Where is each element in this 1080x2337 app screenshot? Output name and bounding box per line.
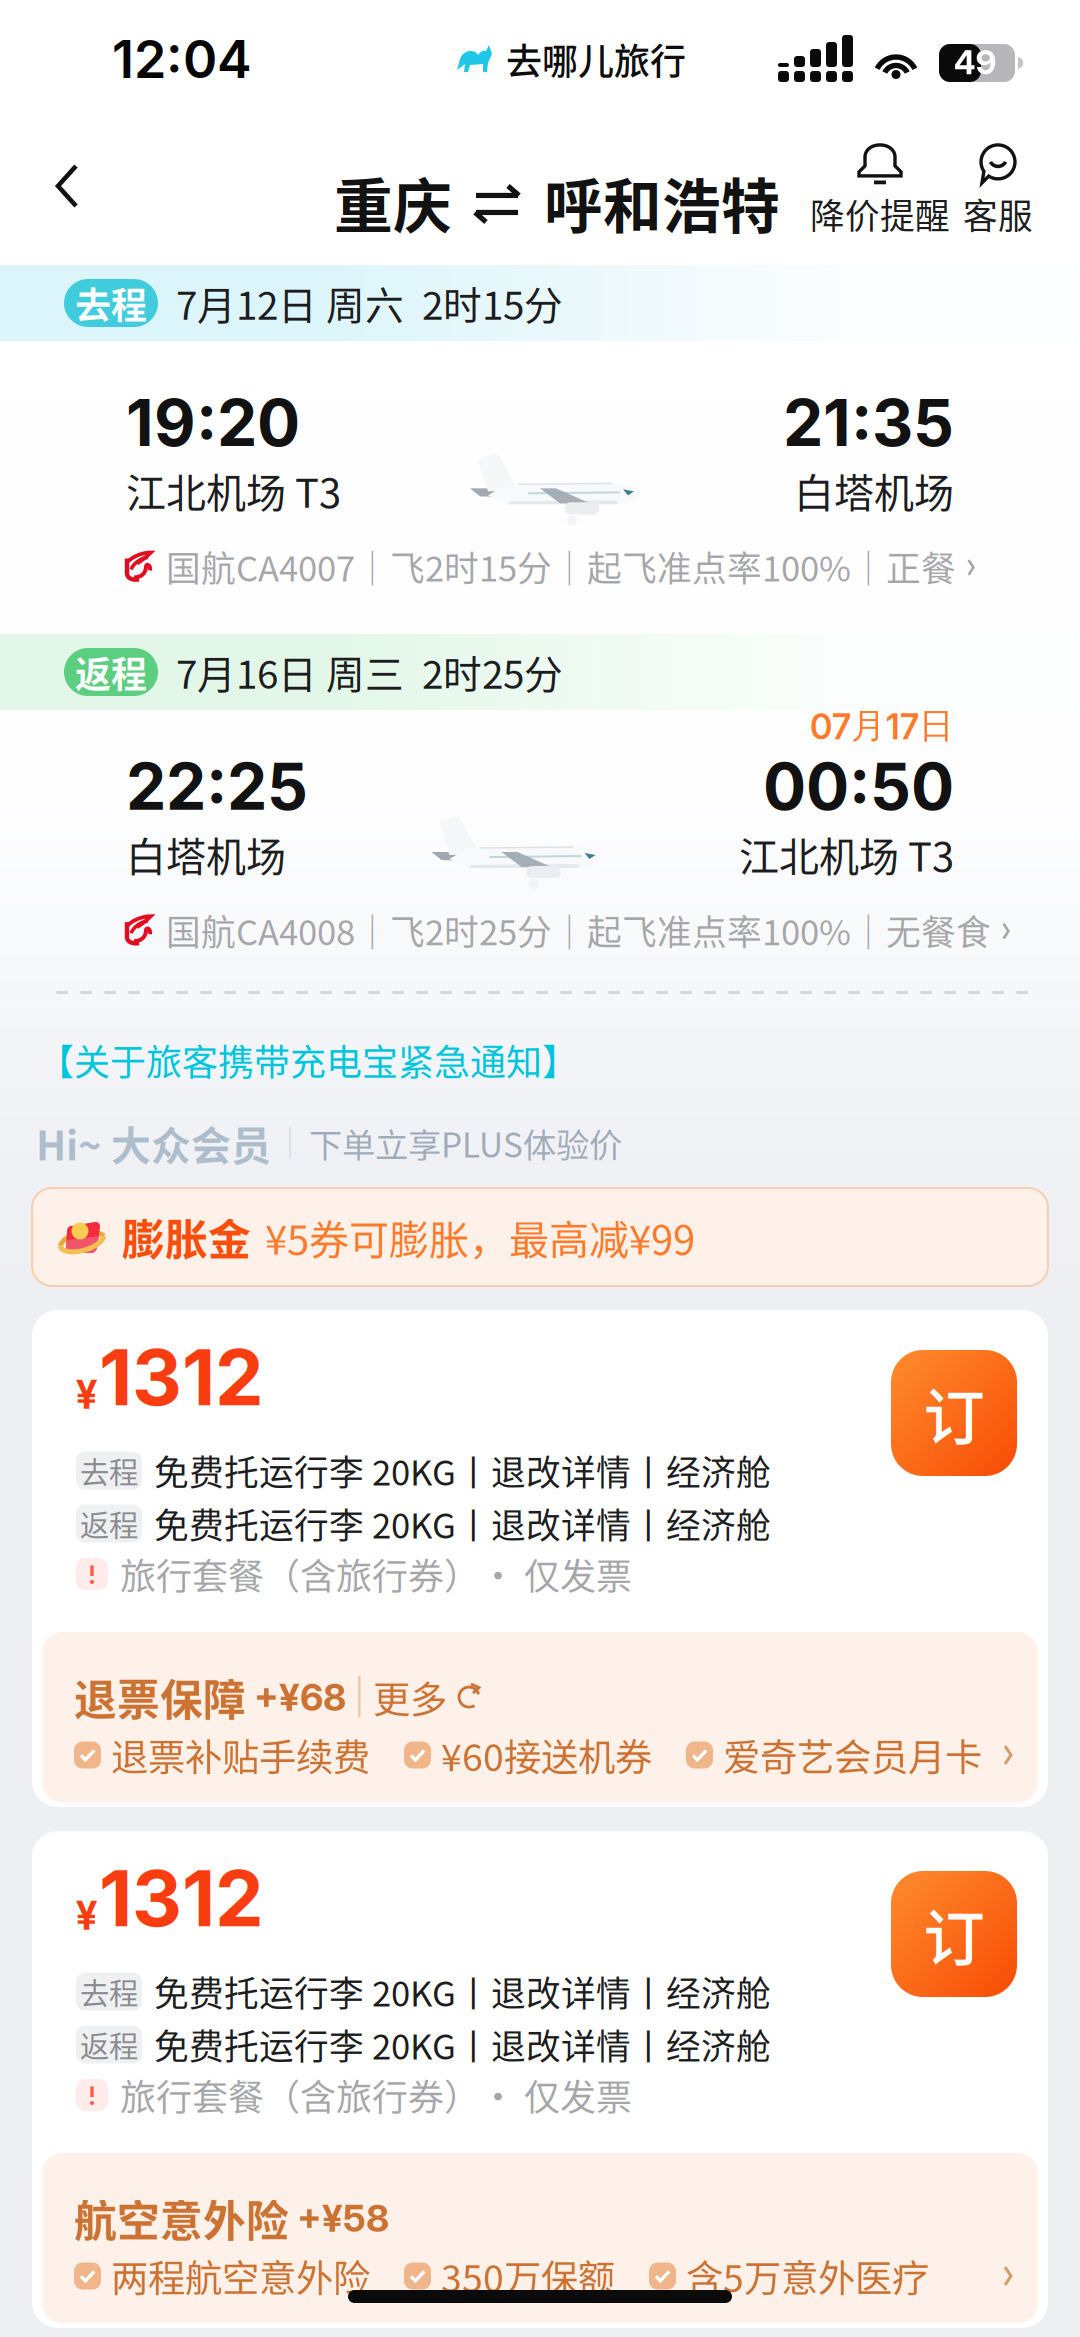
staticText: 返程 <box>80 1502 138 1545</box>
staticText: 7月12日 周六 2时15分 <box>176 275 563 331</box>
button[interactable]: 返回 <box>30 148 106 224</box>
button[interactable]: 订 <box>891 1871 1017 1997</box>
staticText: 免费托运行李 20KG丨退改详情丨经济舱 <box>154 1966 771 2017</box>
staticText: | <box>354 1676 365 1718</box>
staticText: 1312 <box>99 1851 264 1945</box>
staticText: 国航CA4007｜飞2时15分｜起飞准点率100%｜正餐 <box>166 541 956 592</box>
staticText: 客服 <box>963 189 1033 239</box>
button[interactable]: 航空意外险 <box>42 2153 1038 2323</box>
staticText: 江北机场 T3 <box>126 461 341 519</box>
staticText: ¥60接送机券 <box>441 1728 652 1782</box>
staticText: 订 <box>923 1890 984 1978</box>
button[interactable]: 【关于旅客携带充电宝紧急通知】 <box>38 1034 578 1086</box>
staticText: 退票补贴手续费 <box>111 1728 370 1782</box>
staticText: 去程 <box>75 277 147 329</box>
staticText: 免费托运行李 20KG丨退改详情丨经济舱 <box>154 2019 771 2070</box>
button[interactable]: 客服 <box>948 142 1048 238</box>
staticText: 旅行套餐（含旅行券）· 仅发票 <box>120 1548 632 1600</box>
staticText: +¥68 <box>254 1674 346 1720</box>
staticText: 12:04 <box>112 27 252 90</box>
button[interactable]: 降价提醒 <box>812 142 948 238</box>
button[interactable]: 国航CA4007｜飞2时15分｜起飞准点率100%｜正餐 <box>0 519 1080 592</box>
staticText: 22:25 <box>126 748 308 825</box>
staticText: 降价提醒 <box>810 189 950 239</box>
staticText: 白塔机场 <box>794 461 954 519</box>
staticText: Hi~ 大众会员 <box>36 1114 271 1172</box>
staticText: ¥5券可膨胀，最高减¥99 <box>265 1208 695 1266</box>
button[interactable]: 订 <box>891 1350 1017 1476</box>
staticText: 21:35 <box>783 384 954 461</box>
staticText: 下单立享PLUS体验价 <box>309 1119 622 1167</box>
staticText: 膨胀金 <box>122 1206 251 1268</box>
staticText: 订 <box>923 1369 984 1457</box>
staticText: 更多 <box>373 1670 447 1724</box>
staticText: 19:20 <box>126 384 300 461</box>
staticText: 江北机场 T3 <box>739 825 954 883</box>
staticText: 【关于旅客携带充电宝紧急通知】 <box>38 1034 578 1086</box>
staticText: +¥58 <box>297 2195 389 2241</box>
staticText: 去哪儿旅行 <box>506 33 686 85</box>
staticText: 退票保障 <box>74 1666 246 1728</box>
staticText: 00:50 <box>763 748 954 825</box>
staticText: 免费托运行李 20KG丨退改详情丨经济舱 <box>154 1445 771 1496</box>
staticText: 免费托运行李 20KG丨退改详情丨经济舱 <box>154 1498 771 1549</box>
staticText: 返程 <box>75 646 147 698</box>
staticText: ¥ <box>76 1892 97 1939</box>
staticText: 去程 <box>80 1449 138 1492</box>
staticText: 爱奇艺会员月卡 <box>723 1728 982 1782</box>
staticText: 1312 <box>99 1330 264 1424</box>
staticText: 两程航空意外险 <box>111 2249 370 2303</box>
staticText: 49 <box>953 42 996 82</box>
staticText: 返程 <box>80 2023 138 2066</box>
button[interactable]: 国航CA4008｜飞2时25分｜起飞准点率100%｜无餐食 <box>0 883 1080 955</box>
staticText: 350万保额 <box>441 2249 615 2303</box>
button[interactable]: 退票保障 <box>42 1632 1038 1802</box>
staticText: 7月16日 周三 2时25分 <box>176 644 563 700</box>
staticText: 航空意外险 <box>74 2187 289 2249</box>
staticText: 重庆 <box>334 160 452 245</box>
button[interactable]: 膨胀金 <box>32 1188 1048 1286</box>
staticText: ¥ <box>76 1371 97 1418</box>
staticText: 07月17日 <box>810 704 954 748</box>
staticText: 旅行套餐（含旅行券）· 仅发票 <box>120 2069 632 2121</box>
staticText: 白塔机场 <box>126 825 286 883</box>
staticText: 国航CA4008｜飞2时25分｜起飞准点率100%｜无餐食 <box>166 905 991 955</box>
staticText: 呼和浩特 <box>544 160 780 245</box>
staticText: 去程 <box>80 1970 138 2013</box>
staticText: 含5万意外医疗 <box>686 2249 929 2303</box>
